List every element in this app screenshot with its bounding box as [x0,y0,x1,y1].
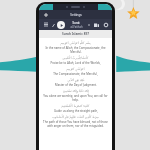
button[interactable]: صِرَٰطَ ٱلَّذِينَ أَنْعَمْتَ عَلَيْهِمْ … [39,114,112,129]
button[interactable]: ٱهْدِنَا ٱلصِّرَٰطَ ٱلْمُسْتَقِيمَ [39,103,112,114]
staticText: ٱلْحَمْدُ لِلَّٰهِ رَبِّ ٱلْعَٰلَمِينَ [62,56,89,60]
staticText: Merciful. [70,50,82,54]
button[interactable]: Surah Islamic 897 [39,30,112,38]
button[interactable]: Repeat [86,22,91,27]
button[interactable]: ٱلرَّحْمَٰنِ ٱلرَّحِيمِ [39,66,112,77]
staticText: Master of the Day of Judgment. [55,83,97,87]
staticText: ٱلرَّحْمَٰنِ ٱلرَّحِيمِ [66,67,85,71]
button[interactable]: Back [42,11,49,18]
other: Star decoration [123,0,143,24]
staticText: صِرَٰطَ ٱلَّذِينَ أَنْعَمْتَ عَلَيْهِمْ … [52,115,99,119]
staticText: Surah Islamic 897 [62,32,89,36]
staticText: help. [72,98,79,102]
staticText: إِيَّاكَ نَعْبُدُ وَإِيَّاكَ نَسْتَعِينُ [63,89,89,93]
staticText: with anger on them, nor of the misguided… [47,124,104,128]
staticText: ٱهْدِنَا ٱلصِّرَٰطَ ٱلْمُسْتَقِيمَ [61,104,90,108]
button[interactable]: Surat [67,21,85,29]
button[interactable]: Play [57,21,65,29]
staticText: مَٰلِكِ يَوْمِ ٱلدِّينِ [67,78,85,82]
button[interactable]: Layout [93,21,100,28]
button[interactable]: بِسْمِ ٱللَّٰهِ ٱلرَّحْمَٰنِ ٱلرَّحِيمِ [39,40,112,55]
button[interactable]: Menu [42,21,49,28]
staticText: You alone we worship, and upon You, we c… [43,94,108,98]
staticText: In the name of Allah, the Compassionate,… [45,46,106,50]
staticText: The Compassionate, the Merciful, [53,72,98,76]
button[interactable]: Bookmark [50,22,56,28]
staticText: The path of those You have blessed, not … [43,120,108,124]
button[interactable]: مَٰلِكِ يَوْمِ ٱلدِّينِ [39,77,112,88]
button[interactable]: إِيَّاكَ نَعْبُدُ وَإِيَّاكَ نَسْتَعِينُ [39,88,112,103]
button[interactable]: ٱلْحَمْدُ لِلَّٰهِ رَبِّ ٱلْعَٰلَمِينَ [39,55,112,66]
staticText: Settings [70,13,82,17]
staticText: Praise be to Allah, Lord of the Worlds, [50,61,101,65]
staticText: Guide us along the straight path, [54,109,98,113]
staticText: بِسْمِ ٱللَّٰهِ ٱلرَّحْمَٰنِ ٱلرَّحِيمِ [60,41,91,45]
button[interactable]: Settings [70,13,82,17]
staticText: al-Fatihah [70,25,83,29]
staticText: Surat [72,21,80,25]
button[interactable]: Settings [102,21,109,28]
